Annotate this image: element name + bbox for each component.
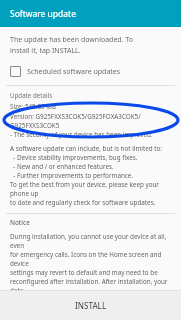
button[interactable]: Software update [0,0,181,27]
staticText: A software update can include, but is no… [10,144,171,207]
staticText: The update has been downloaded. To insta… [10,35,134,55]
staticText: Notice [10,218,30,227]
button[interactable]: INSTALL [0,291,181,320]
staticText: - The security of your device has been i… [10,130,153,139]
staticText: Size: 545.89 MB [10,102,57,111]
staticText: INSTALL [75,300,107,311]
button[interactable]: Scheduled software updates [0,64,181,79]
staticText: Software update [10,8,76,20]
staticText: Scheduled software updates [27,67,121,77]
staticText: Update details [10,91,53,99]
staticText: During installation, you cannot use your… [10,232,171,290]
staticText: Version: G925FXXS3COK5/G925FOXA3COK5/ G9… [10,112,141,129]
